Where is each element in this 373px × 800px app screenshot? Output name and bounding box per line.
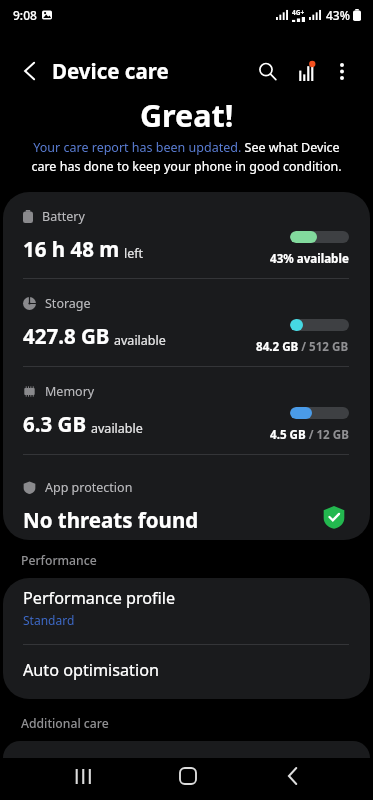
button[interactable]: Usage statistics (286, 49, 327, 93)
button[interactable]: Performance profile (3, 578, 370, 644)
staticText: 4G+ (292, 8, 305, 17)
staticText: Storage (45, 295, 91, 312)
staticText: Additional care (21, 715, 109, 732)
staticText: 9:08 (13, 7, 37, 23)
button[interactable]: App protection (3, 455, 370, 540)
button[interactable]: More options (317, 49, 367, 93)
staticText: Device care (52, 57, 169, 85)
staticText: Auto optimisation (23, 659, 159, 681)
staticText: left (124, 245, 144, 262)
button[interactable]: Back (240, 758, 345, 794)
staticText: Memory (45, 383, 95, 400)
staticText: Performance profile (23, 587, 176, 609)
staticText: Your care report has been updated. See w… (24, 139, 349, 174)
button[interactable]: Memory (3, 367, 370, 454)
staticText: App protection (45, 479, 133, 496)
staticText: 16 h 48 m (23, 235, 120, 263)
staticText: Standard (23, 612, 75, 628)
staticText: available (114, 332, 166, 349)
staticText: available (91, 420, 143, 437)
staticText: Battery (42, 208, 85, 225)
staticText: No threats found (23, 506, 199, 534)
staticText: 6.3 GB (23, 410, 87, 438)
staticText: 84.2 GB / 512 GB (256, 339, 349, 355)
staticText: Performance (21, 552, 97, 569)
staticText: Great! (140, 94, 234, 136)
button[interactable]: Recent apps (30, 758, 135, 794)
button[interactable]: Search (249, 49, 285, 93)
staticText: 43% (326, 7, 350, 23)
button[interactable]: Battery (3, 192, 370, 278)
button[interactable]: Auto optimisation (3, 645, 370, 699)
staticText: 427.8 GB (23, 322, 110, 350)
staticText: 43% available (270, 251, 349, 267)
button[interactable]: Navigate up (0, 45, 58, 97)
staticText: 4.5 GB / 12 GB (270, 427, 349, 443)
button[interactable]: Storage (3, 279, 370, 366)
button[interactable]: Home (135, 758, 240, 794)
